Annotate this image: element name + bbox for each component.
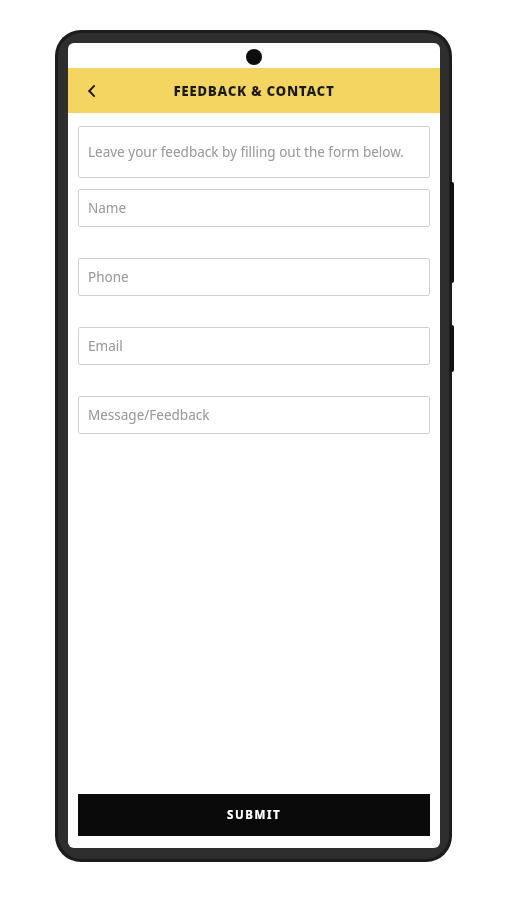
button[interactable]: Back — [76, 75, 108, 107]
button[interactable]: SUBMIT — [78, 794, 430, 836]
button[interactable]: Email — [78, 327, 430, 365]
staticText: Leave your feedback by filling out the f… — [88, 143, 404, 161]
staticText: FEEDBACK & CONTACT — [68, 82, 440, 100]
button[interactable]: Message/Feedback — [78, 396, 430, 434]
staticText: Phone — [88, 268, 129, 286]
staticText: Name — [88, 199, 127, 217]
staticText: Message/Feedback — [88, 406, 210, 424]
button[interactable]: Phone — [78, 258, 430, 296]
button[interactable]: Name — [78, 189, 430, 227]
staticText: Email — [88, 337, 123, 355]
staticText: SUBMIT — [227, 807, 282, 823]
